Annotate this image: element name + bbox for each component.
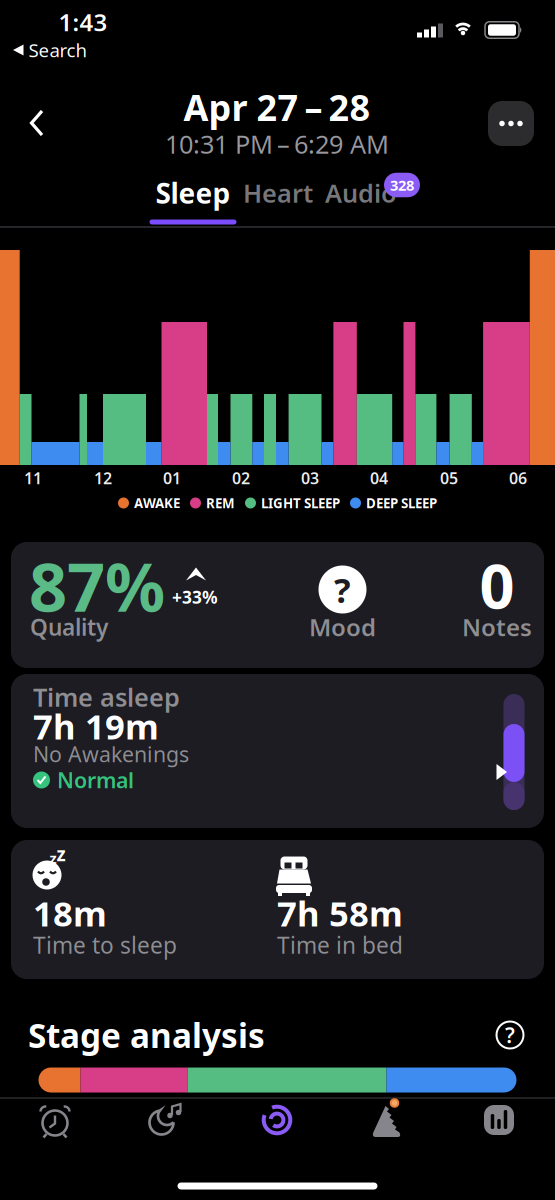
button[interactable]: Sleep sounds (147, 1103, 185, 1139)
staticText: Time in bed (277, 930, 403, 960)
button[interactable]: Statistics (482, 1103, 516, 1137)
staticText: +33% (172, 585, 218, 608)
staticText: Search (28, 38, 87, 62)
staticText: z (56, 842, 65, 866)
button[interactable]: Stage analysis help (496, 1021, 523, 1049)
staticText: REM (206, 494, 235, 512)
staticText: 01 (163, 467, 181, 489)
staticText: 04 (370, 467, 388, 489)
staticText: Time to sleep (33, 930, 177, 960)
button[interactable]: Sleep (155, 174, 230, 212)
button[interactable]: Search (12, 38, 87, 62)
button[interactable]: Alarm (38, 1103, 72, 1139)
staticText: 12 (94, 467, 112, 489)
staticText: ? (505, 1021, 515, 1049)
staticText: 7h 58m (277, 890, 403, 936)
button[interactable]: More (488, 101, 534, 146)
staticText: Audio (325, 176, 397, 210)
staticText: 05 (440, 467, 458, 489)
staticText: 11 (24, 467, 42, 489)
staticText: AWAKE (134, 494, 180, 512)
staticText: 18m (33, 890, 107, 936)
staticText: Sleep (155, 174, 230, 212)
button[interactable]: Audio (325, 176, 397, 210)
staticText: 1:43 (58, 6, 107, 38)
staticText: 02 (232, 467, 250, 489)
button[interactable]: Sleep (260, 1103, 294, 1137)
staticText: 87% (29, 542, 165, 630)
staticText: LIGHT SLEEP (261, 494, 340, 512)
staticText: Stage analysis (28, 1013, 265, 1057)
staticText: No Awakenings (33, 740, 189, 768)
staticText: 7h 19m (33, 703, 159, 749)
staticText: 03 (301, 467, 319, 489)
staticText: Mood (309, 611, 376, 643)
staticText: Heart (243, 176, 313, 210)
staticText: 10:31 PM – 6:29 AM (165, 127, 389, 161)
staticText: Notes (462, 611, 532, 643)
staticText: ? (334, 566, 351, 612)
staticText: Time asleep (33, 680, 180, 714)
button[interactable]: Notes (449, 554, 545, 658)
staticText: 06 (509, 467, 527, 489)
button[interactable]: Back (30, 109, 44, 136)
staticText: Apr 27 – 28 (183, 83, 370, 131)
staticText: DEEP SLEEP (366, 494, 437, 512)
staticText: Normal (57, 766, 134, 794)
button[interactable]: Heart (243, 176, 313, 210)
button[interactable]: Mood (294, 554, 390, 658)
staticText: z (49, 848, 56, 868)
staticText: 0 (479, 544, 514, 626)
staticText: Quality (30, 612, 108, 642)
button[interactable]: Journey (369, 1099, 405, 1139)
staticText: 328 (390, 175, 414, 195)
